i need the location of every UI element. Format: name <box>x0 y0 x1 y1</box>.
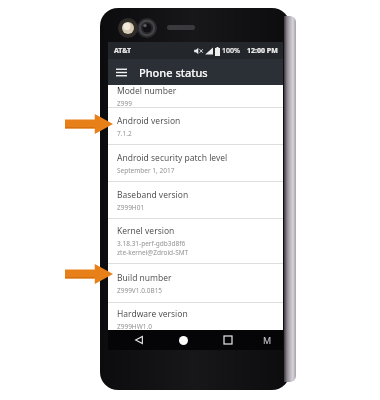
staticText: M <box>263 334 272 346</box>
staticText: zte-kernel@Zdroid-SMT <box>117 248 189 257</box>
other: Annotation arrow <box>65 263 113 285</box>
staticText: 3.18.31-perf-gdb3d8f6 <box>117 239 186 248</box>
staticText: Android security patch level <box>117 152 228 164</box>
button[interactable]: Baseband version <box>108 182 283 218</box>
staticText: Z999V1.0.0B15 <box>117 286 163 295</box>
button[interactable]: Back <box>130 331 148 349</box>
staticText: 12:00 PM <box>247 46 278 56</box>
staticText: Baseband version <box>117 189 189 201</box>
staticText: Z999 <box>117 99 132 107</box>
staticText: September 1, 2017 <box>117 166 175 175</box>
button[interactable]: Build number <box>108 264 283 302</box>
staticText: 100% <box>222 46 240 56</box>
button[interactable]: Open navigation menu <box>108 63 135 82</box>
button[interactable]: Model number <box>108 85 283 107</box>
staticText: Hardware version <box>117 308 188 320</box>
staticText: Model number <box>117 85 177 97</box>
staticText: Z999H01 <box>117 203 145 212</box>
staticText: Z999HW1.0 <box>117 322 152 331</box>
staticText: Android version <box>117 115 181 127</box>
button[interactable]: Android security patch level <box>108 145 283 181</box>
button[interactable]: Kernel version <box>108 219 283 263</box>
staticText: 7.1.2 <box>117 129 132 138</box>
staticText: AT&T <box>114 46 132 56</box>
staticText: Kernel version <box>117 225 175 237</box>
staticText: Phone status <box>139 65 208 80</box>
button[interactable]: Hardware version <box>108 303 283 335</box>
other: Annotation arrow <box>65 113 113 135</box>
staticText: Build number <box>117 272 172 284</box>
button[interactable]: Android version <box>108 108 283 144</box>
button[interactable]: Menu M key <box>259 330 276 350</box>
button[interactable]: Home <box>174 331 193 350</box>
button[interactable]: Recent apps <box>219 331 237 349</box>
